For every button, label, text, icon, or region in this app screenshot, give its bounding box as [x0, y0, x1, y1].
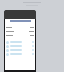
button[interactable]: Item icon: [5, 52, 35, 56]
other: Item icon: [6, 53, 9, 56]
button[interactable]: [5, 25, 35, 29]
button[interactable]: Item icon: [5, 40, 35, 44]
button[interactable]: Item icon: [5, 44, 35, 48]
button[interactable]: [5, 29, 35, 33]
button[interactable]: [5, 33, 35, 37]
other: Item icon: [6, 41, 9, 44]
other: Item icon: [6, 45, 9, 48]
other: Item icon: [6, 49, 9, 52]
button[interactable]: Item icon: [5, 48, 35, 52]
